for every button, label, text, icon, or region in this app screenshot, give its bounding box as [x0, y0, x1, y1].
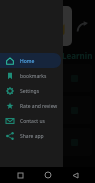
button[interactable]: Home — [0, 53, 61, 68]
button[interactable]: Settings — [0, 83, 61, 98]
button[interactable] — [2, 6, 72, 46]
button[interactable]: Recents — [13, 168, 27, 182]
staticText: Share app — [20, 133, 44, 140]
staticText: Settings — [20, 88, 40, 95]
button[interactable]: bookmarks — [0, 68, 61, 83]
button[interactable]: Back — [68, 168, 82, 182]
button[interactable]: Home — [41, 168, 55, 182]
button[interactable]: Share app — [0, 128, 61, 143]
staticText: Home — [20, 58, 35, 65]
button[interactable] — [3, 128, 92, 156]
staticText: Contact us — [20, 118, 45, 125]
staticText: Rate and review — [20, 103, 58, 110]
staticText: Learning — [62, 50, 95, 64]
button[interactable]: Rate and review — [0, 98, 61, 113]
button[interactable]: Contact us — [0, 113, 61, 128]
button[interactable] — [3, 64, 92, 92]
button[interactable]: Share — [73, 17, 91, 35]
button[interactable] — [3, 96, 92, 124]
staticText: bookmarks — [20, 73, 47, 80]
